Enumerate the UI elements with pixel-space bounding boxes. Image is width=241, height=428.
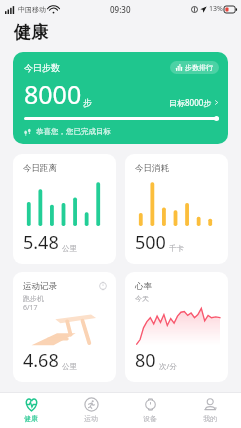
staticText: 恭喜您，您已完成目标 (36, 127, 111, 136)
staticText: 80 (135, 348, 156, 373)
staticText: 目标8000步 (169, 97, 212, 108)
staticText: 13% (209, 4, 223, 14)
staticText: 4.68 (23, 348, 59, 373)
staticText: 健康 (14, 22, 48, 43)
staticText: 运动 (84, 414, 98, 423)
button[interactable]: 今日步数 (13, 52, 228, 144)
staticText: 今日消耗 (135, 163, 169, 174)
staticText: 6/17 (23, 303, 38, 313)
staticText: 中国移动 (18, 5, 46, 14)
staticText: 500 (135, 230, 166, 255)
button[interactable]: 心率 (125, 272, 228, 382)
staticText: 我的 (203, 414, 217, 423)
staticText: 5.48 (23, 230, 59, 255)
button[interactable]: 今日消耗 (125, 154, 228, 264)
staticText: 09:30 (110, 4, 131, 15)
staticText: 今日步数 (24, 62, 60, 73)
button[interactable]: 目标8000步 (169, 97, 219, 108)
staticText: 心率 (135, 281, 152, 292)
staticText: 设备 (143, 414, 157, 423)
button[interactable]: 步数排行 (170, 61, 219, 74)
staticText: 公里 (62, 244, 77, 253)
staticText: 步数排行 (185, 63, 213, 72)
staticText: 运动记录 (23, 281, 57, 292)
button[interactable]: 运动记录 (13, 272, 116, 382)
button[interactable]: 运动 (63, 392, 119, 428)
staticText: 健康 (24, 414, 38, 423)
staticText: 次/分 (159, 361, 177, 371)
other: Watch (98, 281, 108, 291)
button[interactable]: 设备 (122, 392, 178, 428)
staticText: 步 (83, 97, 92, 108)
staticText: 公里 (62, 362, 77, 371)
staticText: 千卡 (169, 244, 184, 253)
button[interactable]: 今日距离 (13, 154, 116, 264)
staticText: 跑步机 (23, 294, 44, 303)
staticText: 今天 (135, 294, 149, 303)
staticText: 8000 (24, 77, 82, 111)
button[interactable]: 健康 (3, 392, 59, 428)
button[interactable]: 我的 (182, 392, 238, 428)
staticText: 今日距离 (23, 163, 57, 174)
